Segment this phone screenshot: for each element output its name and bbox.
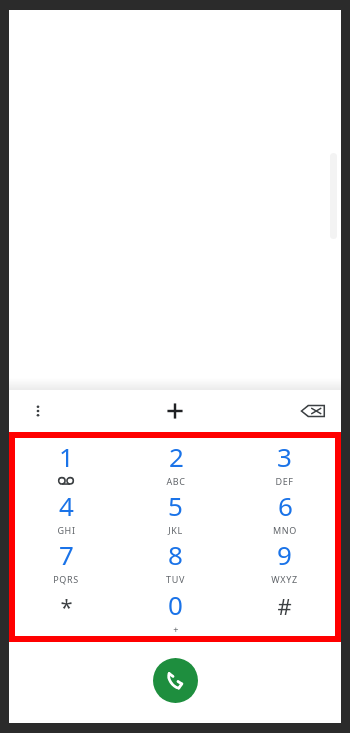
staticText: GHI	[57, 524, 76, 536]
staticText: 5	[168, 488, 183, 523]
button[interactable]: Call	[153, 658, 198, 703]
staticText: 3	[277, 439, 292, 474]
button[interactable]: Add contact	[153, 390, 197, 432]
staticText: PQRS	[53, 573, 79, 585]
button[interactable]: 3	[230, 438, 339, 487]
staticText: 4	[59, 488, 74, 523]
button[interactable]: Backspace	[291, 390, 335, 432]
staticText: WXYZ	[271, 573, 298, 585]
button[interactable]: #	[230, 586, 339, 636]
staticText: +	[173, 623, 179, 635]
button[interactable]: 6	[230, 487, 339, 536]
button[interactable]: 4	[11, 487, 121, 536]
button[interactable]: 1	[11, 438, 121, 487]
staticText: 9	[277, 537, 292, 572]
staticText: 6	[278, 488, 293, 523]
button[interactable]: *	[11, 586, 121, 636]
staticText: 7	[59, 537, 74, 572]
staticText: ABC	[166, 475, 186, 487]
staticText: *	[60, 591, 73, 621]
button[interactable]: 0	[121, 586, 230, 636]
staticText: 2	[169, 439, 184, 474]
button[interactable]: 9	[230, 536, 339, 586]
staticText: JKL	[168, 524, 183, 536]
staticText: 0	[168, 587, 183, 622]
button[interactable]: 5	[121, 487, 230, 536]
staticText: 1	[59, 439, 74, 474]
staticText: #	[277, 591, 292, 621]
button[interactable]: 7	[11, 536, 121, 586]
staticText: 8	[168, 537, 183, 572]
staticText: MNO	[273, 524, 297, 536]
button[interactable]: 2	[121, 438, 230, 487]
button[interactable]: 8	[121, 536, 230, 586]
staticText: TUV	[166, 573, 185, 585]
button[interactable]: More options	[17, 390, 59, 432]
staticText: DEF	[275, 475, 294, 487]
